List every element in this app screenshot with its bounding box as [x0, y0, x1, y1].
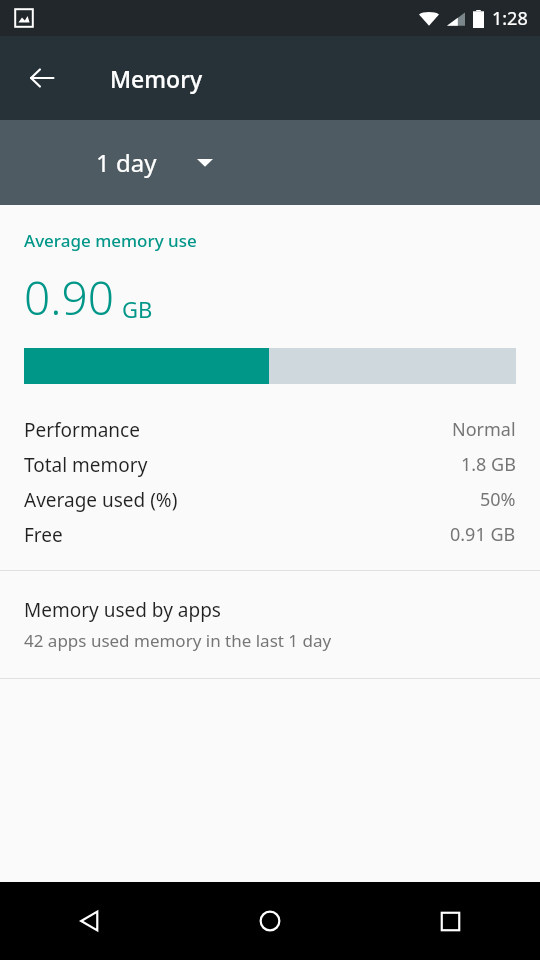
button[interactable]: Back	[0, 882, 180, 960]
staticText: GB	[122, 294, 153, 324]
staticText: 50%	[480, 487, 516, 512]
staticText: 0.90	[24, 266, 115, 329]
button[interactable]: Back	[18, 54, 66, 102]
button[interactable]: Home	[180, 882, 360, 960]
staticText: 1.8 GB	[461, 452, 516, 477]
staticText: Normal	[452, 417, 516, 442]
staticText: 42 apps used memory in the last 1 day	[24, 629, 332, 652]
staticText: Memory	[110, 63, 203, 94]
staticText: Average used (%)	[24, 487, 178, 513]
staticText: 0.91 GB	[450, 522, 516, 547]
button[interactable]: Recent apps	[360, 882, 540, 960]
staticText: Memory used by apps	[24, 597, 221, 623]
staticText: Total memory	[24, 452, 148, 478]
staticText: Free	[24, 522, 63, 548]
staticText: 1 day	[96, 146, 157, 179]
button[interactable]: 1 day	[96, 146, 213, 179]
button[interactable]: Memory used by apps	[0, 571, 540, 678]
staticText: Average memory use	[24, 229, 197, 252]
staticText: 1:28	[492, 6, 528, 31]
staticText: Performance	[24, 417, 140, 443]
